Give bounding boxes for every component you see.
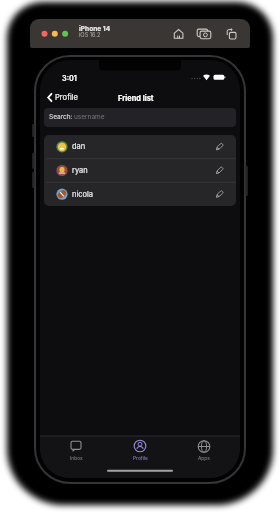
staticText: username xyxy=(74,113,105,121)
staticText: Profile xyxy=(55,93,79,102)
staticText: dan xyxy=(72,142,86,151)
staticText: Search: xyxy=(49,113,73,121)
staticText: Profile xyxy=(133,455,148,461)
button[interactable] xyxy=(40,89,100,106)
button[interactable] xyxy=(223,25,240,42)
button[interactable] xyxy=(106,437,173,467)
button[interactable] xyxy=(213,187,227,201)
button[interactable] xyxy=(170,25,187,42)
button[interactable] xyxy=(40,437,106,467)
staticText: iOS 16.2 xyxy=(79,32,101,39)
staticText: ryan xyxy=(72,166,88,175)
staticText: Apps xyxy=(198,455,210,461)
button[interactable] xyxy=(44,108,236,127)
staticText: nicola xyxy=(72,190,94,199)
staticText: Friend list xyxy=(118,94,154,103)
button[interactable] xyxy=(44,182,236,206)
button[interactable] xyxy=(196,25,213,42)
button[interactable] xyxy=(173,437,240,467)
staticText: iPhone 14 xyxy=(79,25,111,33)
button[interactable] xyxy=(213,163,227,177)
button[interactable] xyxy=(44,159,236,183)
button[interactable] xyxy=(44,135,236,159)
staticText: 3:01 xyxy=(62,74,77,83)
staticText: Inbox xyxy=(70,455,83,461)
button[interactable] xyxy=(213,140,227,154)
